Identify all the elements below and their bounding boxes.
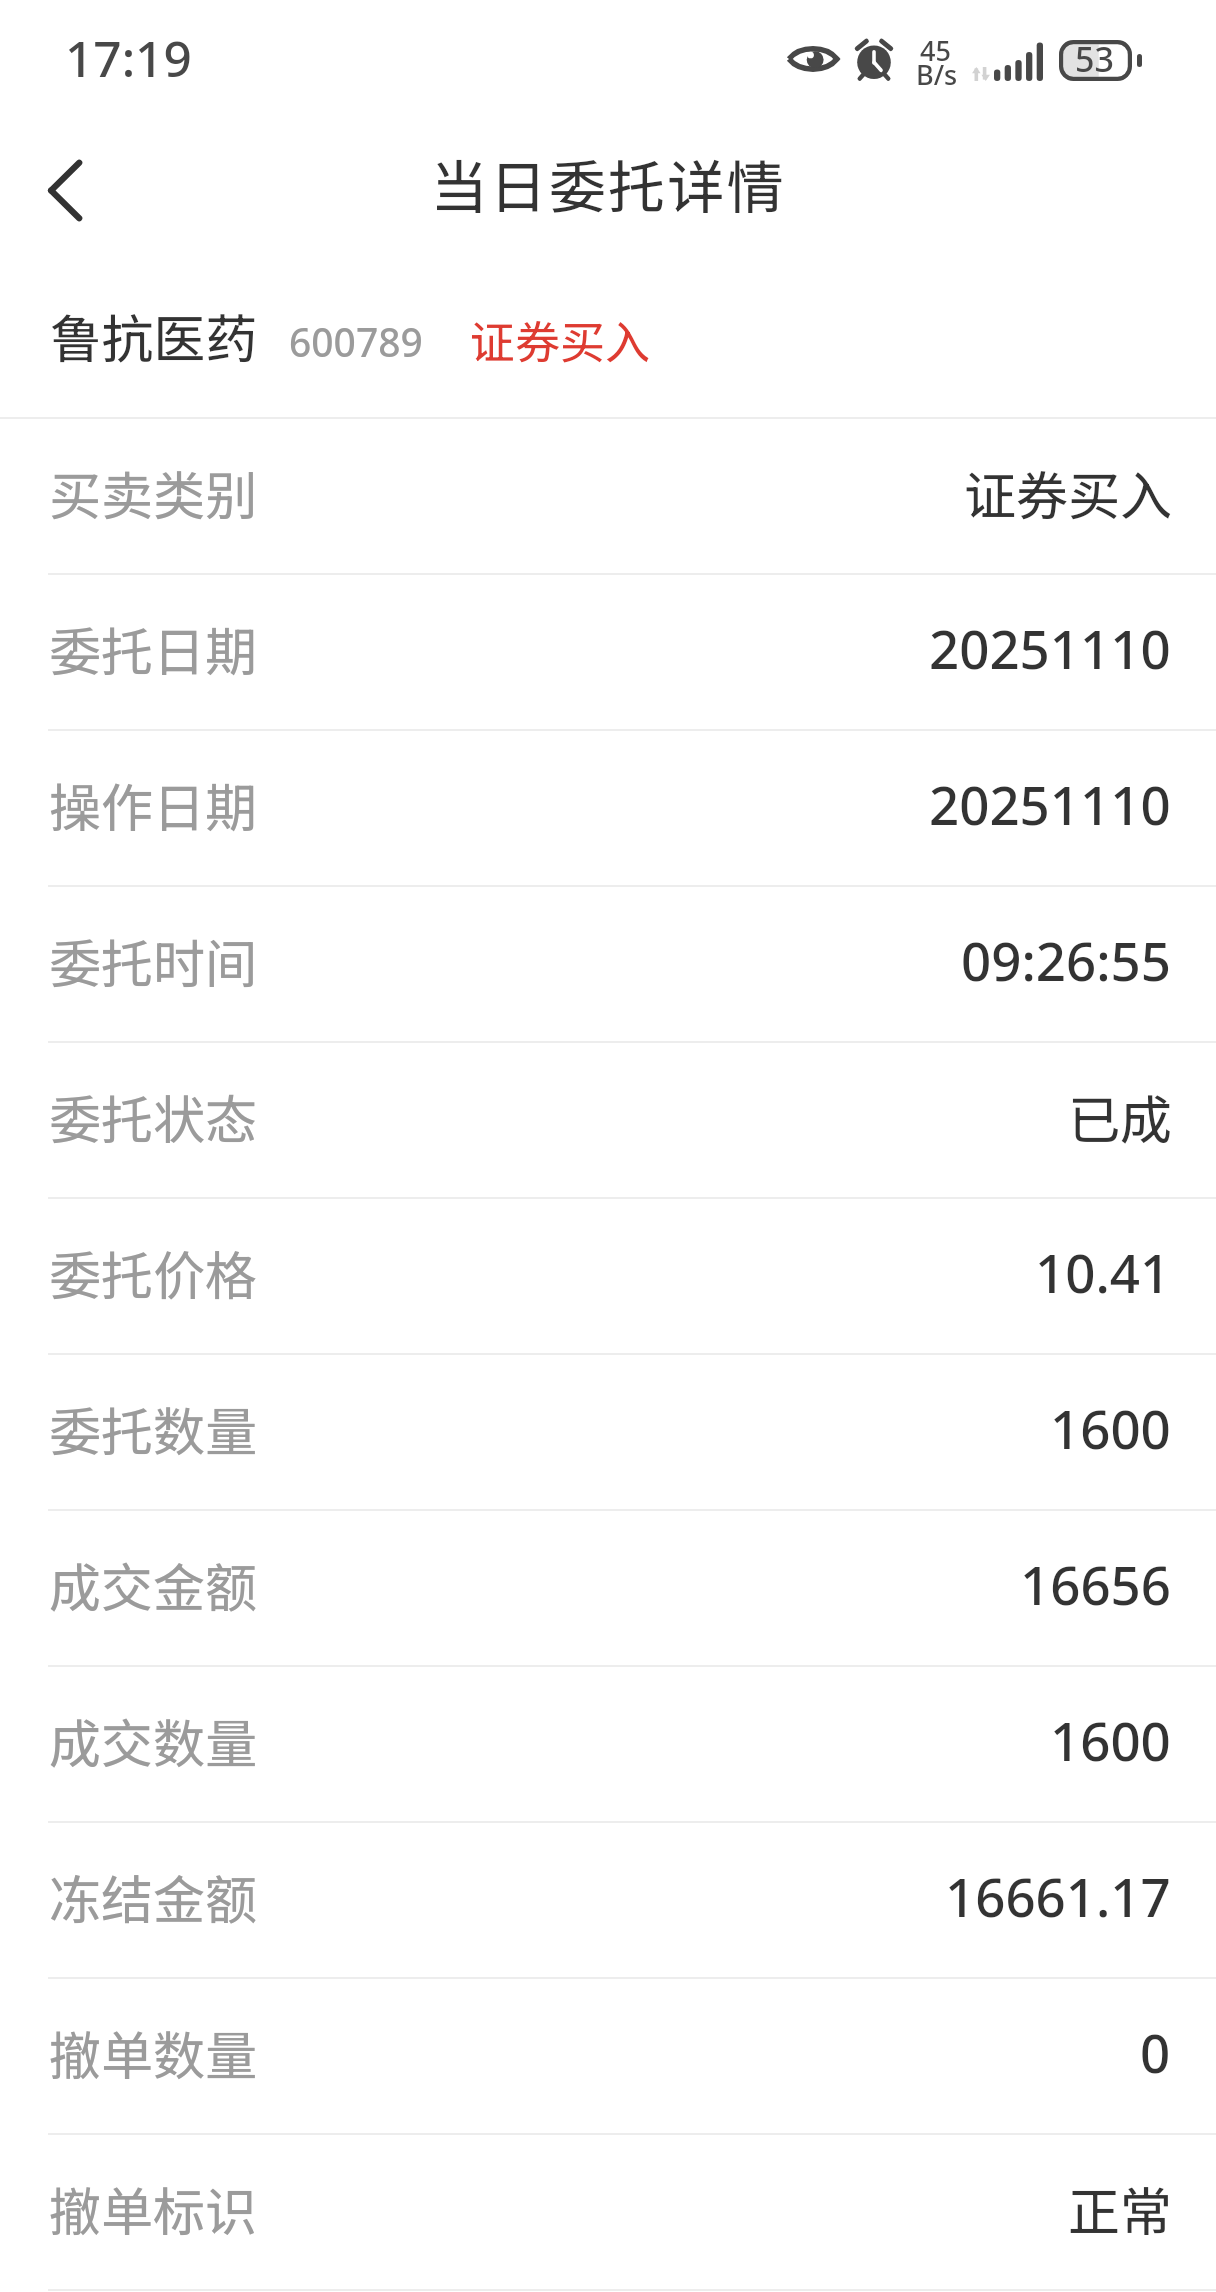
staticText: 撤单数量 — [49, 2015, 258, 2090]
button[interactable]: 委托日期 — [0, 575, 1216, 729]
staticText: 买卖类别 — [49, 455, 258, 530]
staticText: 证券买入 — [470, 307, 651, 372]
other: Signal — [994, 42, 1043, 81]
other: Battery 53 percent — [1059, 40, 1144, 81]
staticText: 委托数量 — [49, 1391, 258, 1466]
staticText: 53 — [1075, 36, 1114, 77]
staticText: 操作日期 — [49, 767, 258, 842]
button[interactable]: 委托价格 — [0, 1199, 1216, 1353]
staticText: 委托状态 — [49, 1079, 258, 1154]
button[interactable]: 成交金额 — [0, 1511, 1216, 1665]
staticText: 委托日期 — [49, 611, 258, 686]
staticText: B/s — [916, 56, 958, 93]
button[interactable]: 委托时间 — [0, 887, 1216, 1041]
button[interactable]: 买卖类别 — [0, 419, 1216, 573]
staticText: 委托价格 — [49, 1235, 258, 1310]
staticText: 17:19 — [65, 24, 192, 91]
other: Eye — [786, 43, 840, 75]
button[interactable]: 委托数量 — [0, 1355, 1216, 1509]
other: Alarm — [853, 40, 895, 79]
staticText: 冻结金额 — [49, 1859, 258, 1934]
button[interactable]: 委托状态 — [0, 1043, 1216, 1197]
staticText: 正常 — [1068, 2171, 1173, 2246]
button[interactable]: 操作日期 — [0, 731, 1216, 885]
staticText: 委托时间 — [49, 923, 258, 998]
staticText: 证券买入 — [964, 455, 1173, 530]
staticText: 20251110 — [929, 613, 1171, 685]
staticText: 09:26:55 — [961, 925, 1171, 997]
staticText: 10.41 — [1035, 1237, 1171, 1309]
button[interactable]: Back — [2, 127, 128, 253]
staticText: 1600 — [1050, 1705, 1171, 1777]
button[interactable]: 冻结金额 — [0, 1823, 1216, 1977]
staticText: 鲁抗医药 — [50, 298, 258, 373]
staticText: 45 — [920, 32, 951, 69]
staticText: 撤单标识 — [49, 2171, 258, 2246]
staticText: 600789 — [289, 315, 423, 368]
staticText: 20251110 — [929, 769, 1171, 841]
button[interactable]: 成交数量 — [0, 1667, 1216, 1821]
staticText: 已成 — [1068, 1079, 1173, 1154]
staticText: 1600 — [1050, 1393, 1171, 1465]
staticText: 当日委托详情 — [430, 142, 786, 225]
staticText: 成交金额 — [49, 1547, 258, 1622]
button[interactable]: 撤单标识 — [0, 2135, 1216, 2289]
staticText: 16661.17 — [945, 1861, 1171, 1933]
staticText: 0 — [1140, 2017, 1171, 2089]
staticText: 16656 — [1020, 1549, 1171, 1621]
button[interactable]: 撤单数量 — [0, 1979, 1216, 2133]
staticText: 成交数量 — [49, 1703, 258, 1778]
other: Network activity — [972, 67, 990, 81]
